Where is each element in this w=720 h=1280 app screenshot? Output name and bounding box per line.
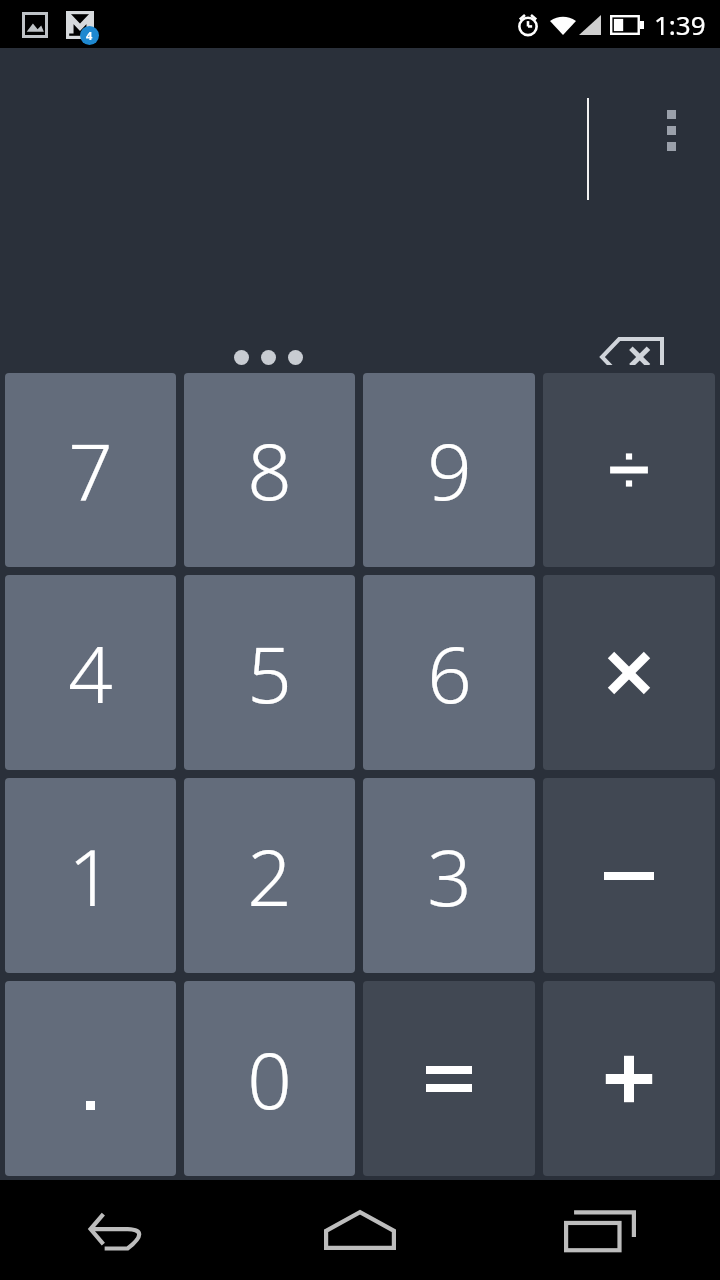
button[interactable]: 5 [184, 575, 355, 770]
button[interactable]: 0 [184, 981, 355, 1176]
staticText: 1:39 [654, 7, 706, 42]
staticText: 1 [68, 823, 113, 929]
button[interactable]: 8 [184, 373, 355, 567]
button[interactable]: Previous expression [214, 326, 322, 388]
button[interactable]: 4 [5, 575, 176, 770]
staticText: 4 [86, 28, 93, 43]
staticText: 6 [427, 620, 472, 726]
button[interactable] [5, 981, 176, 1176]
staticText: 2 [247, 823, 292, 929]
button[interactable]: 9 [363, 373, 535, 567]
staticText: 7 [68, 417, 113, 523]
staticText: 3 [427, 823, 472, 929]
button[interactable]: 1 [5, 778, 176, 973]
button[interactable]: 7 [5, 373, 176, 567]
button[interactable] [543, 575, 715, 770]
button[interactable] [543, 778, 715, 973]
staticText: 0 [247, 1026, 292, 1132]
button[interactable]: 2 [184, 778, 355, 973]
button[interactable] [543, 981, 715, 1176]
staticText: 9 [427, 417, 472, 523]
staticText: 4 [68, 620, 113, 726]
button[interactable]: 3 [363, 778, 535, 973]
staticText: 8 [247, 417, 292, 523]
button[interactable]: Recent apps [480, 1180, 720, 1280]
button[interactable] [543, 373, 715, 567]
button[interactable]: Delete [587, 324, 677, 390]
button[interactable] [363, 981, 535, 1176]
button[interactable]: Back [0, 1180, 240, 1280]
button[interactable]: More options [641, 100, 701, 160]
button[interactable]: Home [240, 1180, 480, 1280]
staticText: 5 [247, 620, 292, 726]
button[interactable]: 6 [363, 575, 535, 770]
